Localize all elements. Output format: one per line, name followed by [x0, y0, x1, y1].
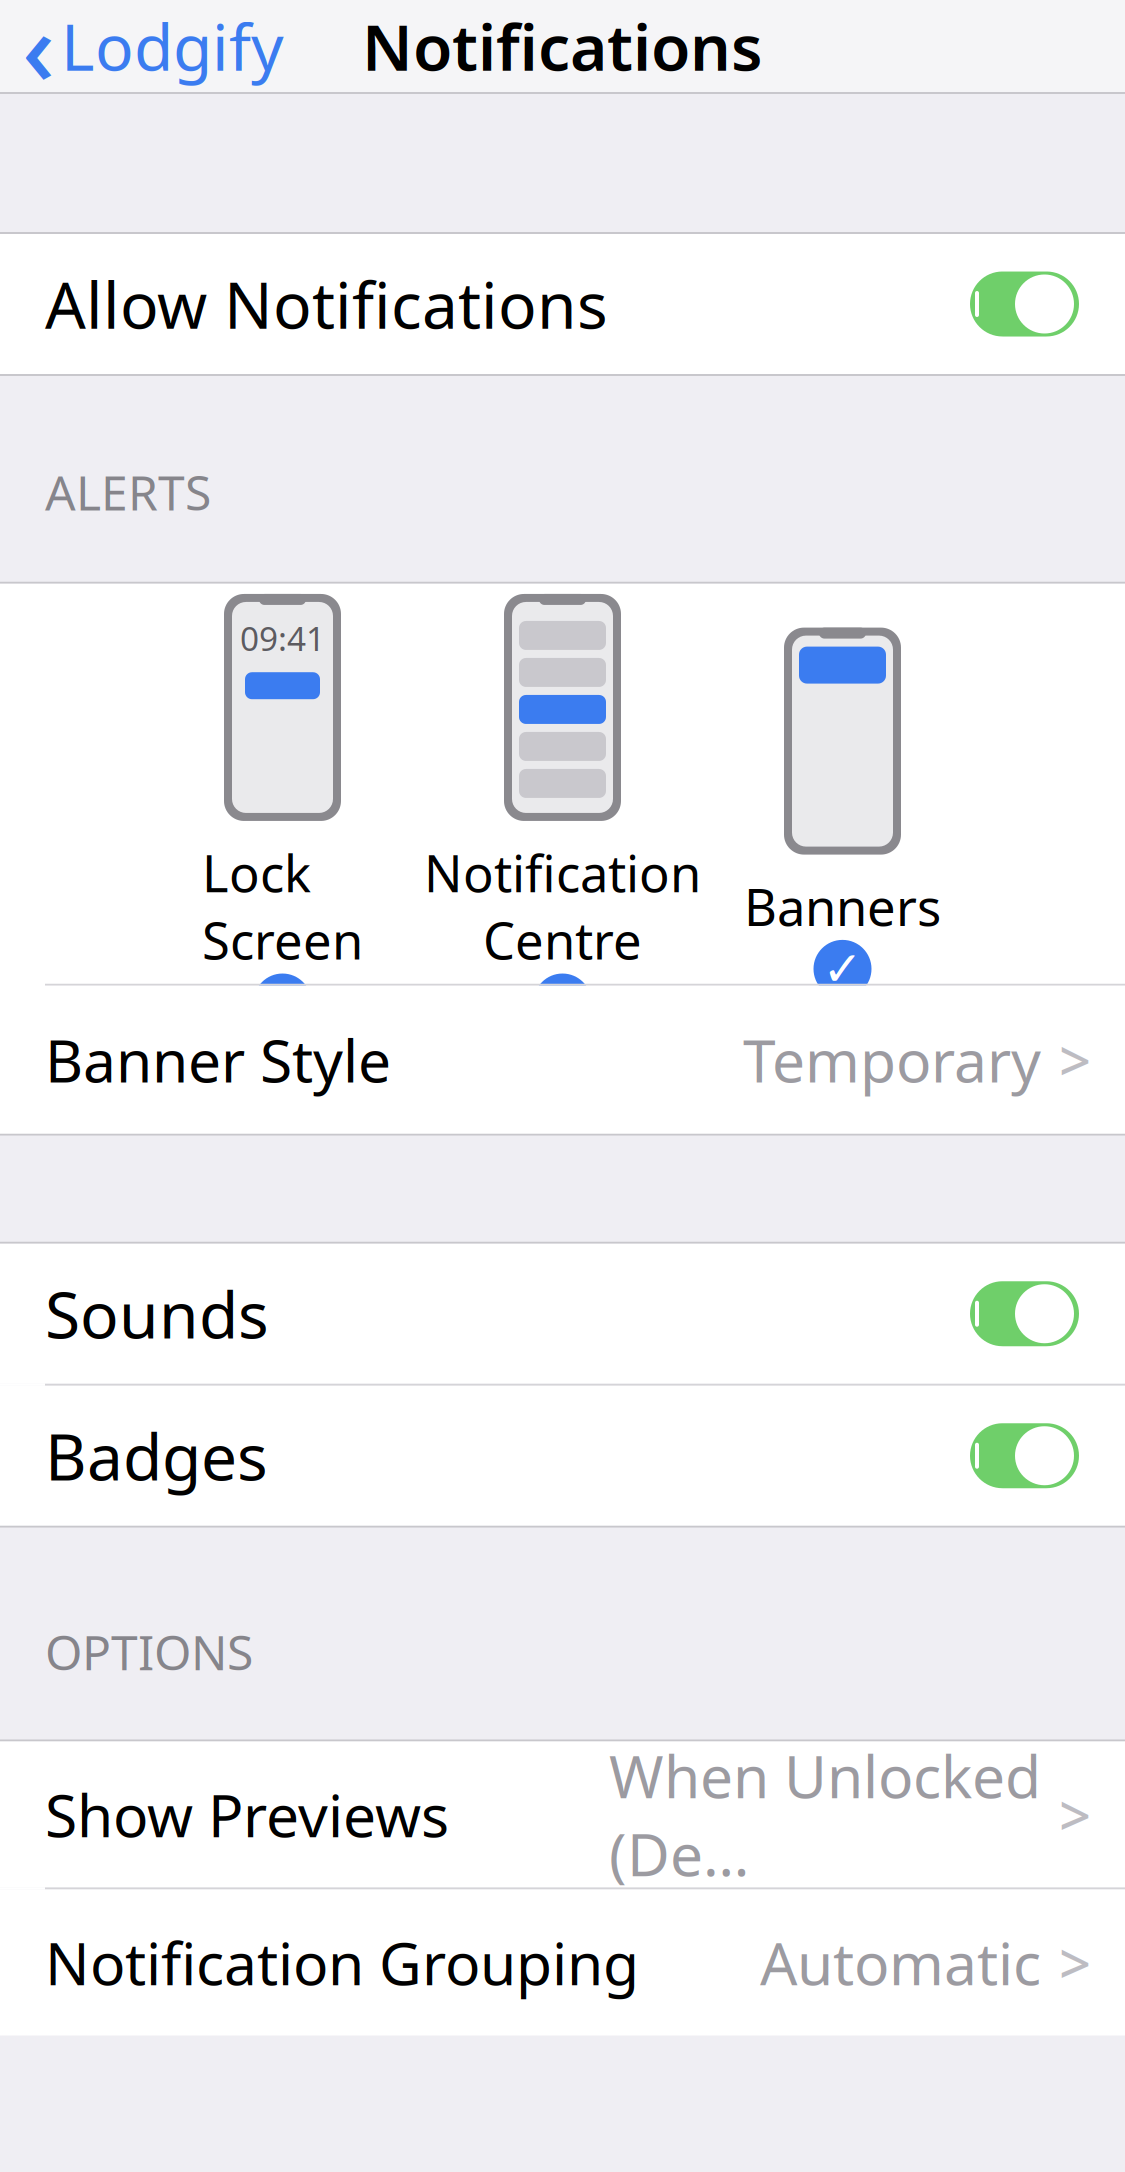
staticText: ALERTS — [45, 460, 211, 524]
staticText: Show Previews — [45, 1775, 449, 1853]
button[interactable]: Banner Style — [0, 986, 1125, 1134]
button[interactable]: 09:41 — [142, 654, 422, 984]
staticText: ✓ — [262, 975, 302, 1030]
staticText: When Unlocked (De… — [609, 1737, 1041, 1892]
staticText: Lock Screen — [202, 839, 363, 974]
button[interactable]: Allow Notifications — [0, 234, 1125, 374]
staticText: Banners — [744, 873, 941, 940]
staticText: Temporary — [743, 1021, 1041, 1099]
staticText: ✓ — [542, 975, 582, 1030]
button[interactable]: Banners — [702, 654, 982, 984]
staticText: Centre — [483, 906, 642, 973]
staticText: ‹ — [22, 0, 55, 113]
button[interactable]: Notification Grouping — [0, 1889, 1125, 2035]
button[interactable]: ‹ — [0, 0, 298, 92]
staticText: 09:41 — [240, 616, 325, 660]
staticText: > — [1059, 1777, 1091, 1852]
staticText: Automatic — [760, 1923, 1041, 2001]
staticText: Notifications — [362, 3, 763, 88]
button[interactable]: Sounds — [0, 1244, 1125, 1384]
staticText: Sounds — [45, 1271, 269, 1356]
staticText: Allow Notifications — [45, 261, 608, 346]
staticText: Notification Grouping — [45, 1923, 639, 2001]
button[interactable]: Notification — [422, 654, 702, 984]
button[interactable]: Badges — [0, 1386, 1125, 1526]
staticText: Badges — [45, 1413, 268, 1498]
staticText: Notification — [424, 839, 701, 906]
staticText: ✓ — [822, 942, 862, 996]
staticText: > — [1059, 1023, 1091, 1097]
button[interactable]: Show Previews — [0, 1741, 1125, 1887]
staticText: OPTIONS — [45, 1620, 253, 1683]
staticText: Banner Style — [45, 1021, 391, 1099]
staticText: Lodgify — [61, 3, 284, 88]
staticText: > — [1059, 1925, 1091, 2000]
